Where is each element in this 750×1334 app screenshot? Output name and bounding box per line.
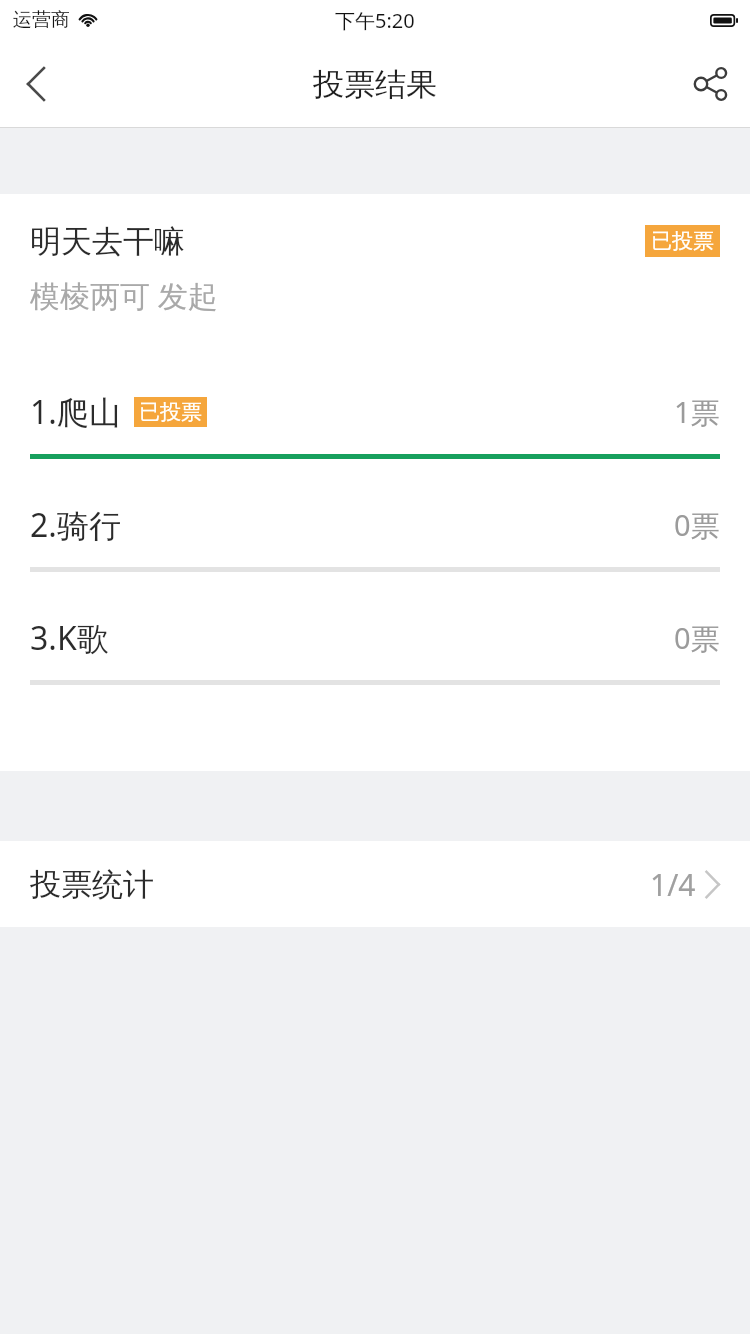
button[interactable]: 投票统计 — [0, 841, 750, 927]
staticText: 3.K歌 — [30, 616, 109, 660]
staticText: 2.骑行 — [30, 503, 121, 547]
staticText: 明天去干嘛 — [30, 222, 185, 261]
staticText: 0票 — [674, 505, 720, 545]
staticText: 1.爬山 — [30, 390, 121, 434]
staticText: 运营商 — [13, 8, 70, 32]
staticText: 已投票 — [139, 399, 202, 425]
staticText: 0票 — [674, 618, 720, 658]
button[interactable]: Back — [0, 48, 72, 120]
button[interactable]: Share — [672, 45, 750, 123]
staticText: 投票统计 — [30, 865, 154, 904]
staticText: 投票结果 — [313, 65, 437, 104]
button[interactable]: 2.骑行 — [0, 503, 750, 616]
staticText: 已投票 — [651, 228, 714, 254]
staticText: 模棱两可 发起 — [30, 275, 218, 316]
staticText: 1/4 — [650, 864, 696, 905]
button[interactable]: 1.爬山 — [0, 390, 750, 503]
button[interactable]: 3.K歌 — [0, 616, 750, 729]
staticText: 下午5:20 — [335, 7, 415, 34]
staticText: 1票 — [674, 392, 720, 432]
